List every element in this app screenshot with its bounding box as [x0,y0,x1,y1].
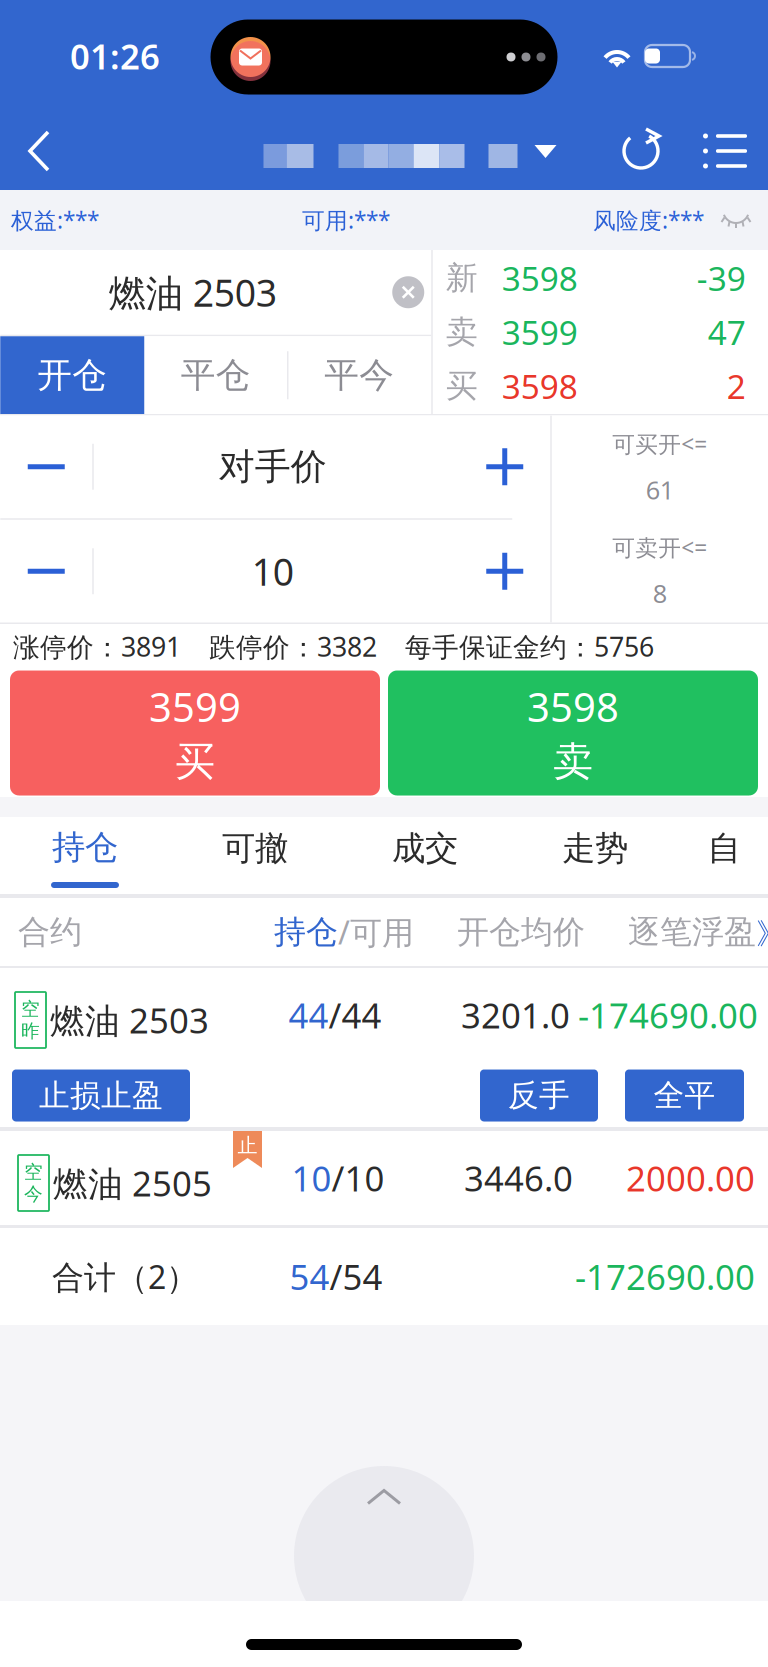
staticText: 2000.00 [626,1155,755,1201]
staticText: 自 [707,828,740,869]
staticText: 》 [756,916,768,952]
staticText: 逐笔浮盈 [628,912,756,952]
staticText: 涨停价：3891 [13,629,181,664]
staticText: 风险度:*** [593,205,704,235]
staticText: 合计（2） [52,1255,198,1298]
button[interactable]: Hide account values [704,190,768,250]
staticText: 卖 [553,737,593,786]
staticText: 54 [289,1253,329,1299]
staticText: 燃油 2505 [53,1160,212,1206]
staticText: 平今 [324,354,394,397]
staticText: 持仓 [52,827,118,868]
staticText: 10 [291,1155,331,1201]
staticText: 3201.0 [461,992,570,1038]
staticText: /可用 [338,911,414,953]
button[interactable]: 成交 [340,817,510,894]
button[interactable]: 全平 [625,1069,744,1121]
staticText: /44 [328,992,381,1038]
staticText: 燃油 2503 [50,997,209,1043]
staticText: 10 [252,546,294,596]
staticText: -39 [697,256,746,300]
staticText: 反手 [508,1077,570,1114]
staticText: 3599 [502,310,578,354]
button[interactable]: 可撤 [170,817,340,894]
button[interactable]: Increase [486,415,524,518]
staticText: 对手价 [219,445,327,489]
staticText: 61 [646,473,674,506]
staticText: 止 [237,1133,257,1158]
staticText: 成交 [392,828,458,869]
button[interactable]: 平今 [287,336,431,414]
button[interactable] [263,132,556,180]
button[interactable]: 3599 [10,670,380,795]
staticText: 全平 [653,1077,715,1114]
button[interactable]: 止损止盈 [12,1069,190,1121]
button[interactable]: 开仓 [0,336,144,414]
button[interactable]: Back [0,112,78,190]
staticText: 买 [446,366,478,406]
button[interactable]: Decrease [0,415,92,518]
button[interactable]: 自 [680,817,768,894]
button[interactable]: Increase [486,520,524,623]
staticText: 买 [175,737,215,786]
staticText: 47 [708,310,746,354]
staticText: 开仓 [37,354,107,397]
staticText: 卖 [446,312,478,352]
staticText: 3598 [502,364,578,408]
staticText: -172690.00 [575,1253,755,1299]
button[interactable]: 3598 [388,670,758,795]
staticText: 今 [24,1182,43,1205]
staticText: 跌停价：3382 [209,629,377,664]
staticText: 每手保证金约：5756 [405,629,654,664]
staticText: /10 [331,1155,384,1201]
staticText: 3598 [527,680,619,733]
button[interactable]: Refresh [602,112,682,190]
staticText: 可用:*** [302,205,390,235]
staticText: 燃油 2503 [109,267,277,317]
staticText: 空 [24,1161,43,1183]
staticText: 3446.0 [464,1155,573,1201]
staticText: -174690.00 [578,992,758,1038]
staticText: 可卖开<= [612,532,707,562]
staticText: 走势 [562,828,628,869]
staticText: 权益:*** [11,205,99,235]
staticText: 止损止盈 [39,1077,163,1114]
staticText: 昨 [21,1019,40,1042]
staticText: 持仓 [274,912,338,952]
button[interactable]: 反手 [480,1069,598,1121]
staticText: 可撤 [222,828,288,869]
staticText: 新 [446,258,478,298]
staticText: /54 [329,1253,382,1299]
staticText: 44 [288,992,328,1038]
staticText: 8 [653,576,667,610]
staticText: 01:26 [70,33,160,79]
staticText: 3598 [502,256,578,300]
button[interactable]: 持仓 [0,817,170,894]
button[interactable]: More [682,112,768,190]
button[interactable]: 平仓 [144,336,287,414]
staticText: 合约 [18,912,82,952]
staticText: 3599 [149,680,241,733]
staticText: 空 [21,998,40,1020]
button[interactable]: Clear contract [385,250,431,335]
staticText: 2 [727,364,746,408]
staticText: 开仓均价 [457,912,585,952]
button[interactable]: 走势 [510,817,680,894]
staticText: 可买开<= [612,429,707,459]
staticText: 平仓 [181,354,251,397]
button[interactable]: Decrease [0,520,92,623]
